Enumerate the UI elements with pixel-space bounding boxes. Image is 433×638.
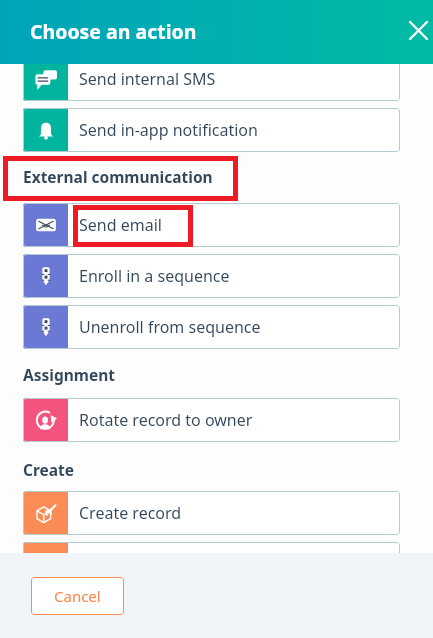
staticText: Assignment — [23, 364, 115, 385]
button[interactable]: Send internal SMS — [23, 57, 400, 101]
staticText: Choose an action — [30, 18, 197, 45]
staticText: Send internal SMS — [79, 68, 216, 90]
staticText: Unenroll from sequence — [79, 316, 261, 338]
button[interactable]: Unenroll from sequence — [23, 305, 400, 349]
staticText: Rotate record to owner — [79, 409, 253, 431]
button[interactable]: Create record — [23, 491, 400, 535]
button[interactable]: Send in-app notification — [23, 108, 400, 152]
staticText: External communication — [23, 166, 213, 187]
button[interactable]: Rotate record to owner — [23, 398, 400, 442]
staticText: Create record — [79, 502, 182, 524]
button[interactable]: Send email — [23, 203, 400, 247]
button[interactable]: Cancel — [31, 577, 124, 615]
staticText: Create — [23, 459, 75, 480]
button[interactable]: Create task — [23, 542, 400, 553]
staticText: Send email — [79, 214, 162, 236]
staticText: Send in-app notification — [79, 119, 258, 141]
button[interactable]: Enroll in a sequence — [23, 254, 400, 298]
staticText: Cancel — [54, 586, 101, 606]
button[interactable]: Close — [396, 8, 433, 52]
staticText: Enroll in a sequence — [79, 265, 230, 287]
